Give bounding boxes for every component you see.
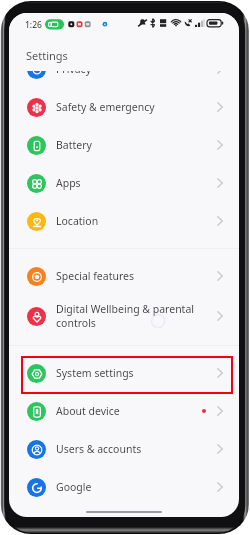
- staticText: Apps: [56, 176, 81, 190]
- button[interactable]: Apps: [9, 164, 239, 202]
- staticText: Settings: [26, 48, 68, 63]
- button[interactable]: Location: [9, 202, 239, 240]
- staticText: Battery: [56, 138, 92, 152]
- button[interactable]: Digital Wellbeing & parental: [9, 295, 239, 337]
- staticText: 1:26: [25, 19, 42, 31]
- button[interactable]: Special features: [9, 257, 239, 295]
- staticText: Location: [56, 214, 99, 228]
- button[interactable]: About device: [9, 392, 239, 430]
- button[interactable]: Safety & emergency: [9, 88, 239, 126]
- button[interactable]: Battery: [9, 126, 239, 164]
- staticText: Users & accounts: [56, 442, 142, 456]
- staticText: About device: [56, 404, 120, 418]
- staticText: controls: [56, 316, 96, 330]
- button[interactable]: Google: [9, 468, 239, 506]
- staticText: Digital Wellbeing & parental: [56, 302, 195, 316]
- staticText: Safety & emergency: [56, 100, 155, 114]
- staticText: Google: [56, 480, 92, 494]
- button[interactable]: System settings: [9, 354, 239, 392]
- button[interactable]: Users & accounts: [9, 430, 239, 468]
- staticText: Special features: [56, 269, 135, 283]
- button[interactable]: Privacy: [9, 71, 239, 88]
- staticText: System settings: [56, 366, 134, 380]
- staticText: Privacy: [56, 71, 92, 76]
